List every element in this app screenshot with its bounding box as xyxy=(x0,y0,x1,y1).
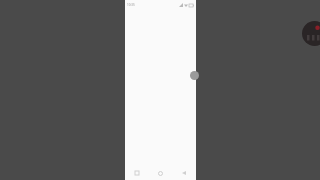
staticText: 10:35 xyxy=(127,3,135,7)
button[interactable]: Back xyxy=(172,166,196,180)
button[interactable]: Recorder watermark xyxy=(302,21,320,46)
button[interactable]: Recent apps xyxy=(125,166,148,180)
button[interactable]: Home xyxy=(148,166,172,180)
button[interactable]: Floating bubble xyxy=(190,71,199,80)
